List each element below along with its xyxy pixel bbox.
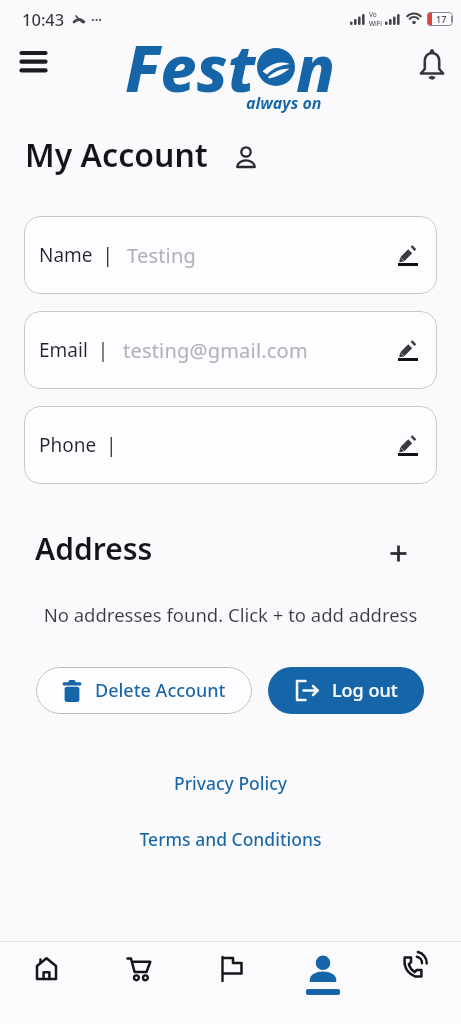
button[interactable]	[0, 942, 93, 1024]
staticText: My Account	[25, 133, 208, 177]
button[interactable]	[185, 942, 277, 1024]
button[interactable]: Email |	[24, 311, 437, 389]
button[interactable]: Name |	[24, 216, 437, 294]
button[interactable]: Log out	[268, 667, 424, 714]
button[interactable]: Privacy Policy	[0, 771, 461, 795]
button[interactable]	[277, 942, 369, 1024]
button[interactable]	[93, 942, 185, 1024]
staticText: Name |	[39, 242, 113, 268]
button[interactable]	[419, 48, 445, 82]
staticText: n	[296, 24, 336, 100]
staticText: Email |	[39, 337, 109, 363]
button[interactable]: Phone |	[24, 406, 437, 484]
staticText: testing@gmail.com	[123, 337, 308, 364]
staticText: Fest	[125, 24, 256, 100]
staticText: ···	[91, 10, 102, 28]
staticText: 17	[436, 13, 447, 25]
button[interactable]	[390, 545, 407, 562]
staticText: Log out	[332, 678, 398, 703]
staticText: 10:43	[22, 8, 65, 30]
button[interactable]: Terms and Conditions	[0, 827, 461, 851]
staticText: always on	[246, 92, 322, 114]
button[interactable]	[369, 942, 461, 1024]
staticText: Address	[35, 528, 153, 569]
staticText: Phone |	[39, 432, 117, 458]
button[interactable]: Delete Account	[36, 667, 252, 714]
staticText: Vo	[369, 10, 377, 19]
staticText: WiFi	[369, 19, 383, 28]
staticText: No addresses found. Click + to add addre…	[0, 602, 461, 627]
staticText: Testing	[127, 242, 197, 269]
button[interactable]	[21, 50, 46, 73]
staticText: Delete Account	[95, 678, 226, 703]
